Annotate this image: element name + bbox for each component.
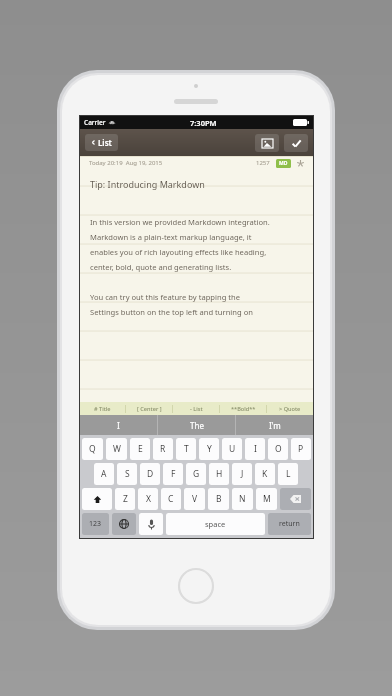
- staticText: I: [117, 420, 120, 431]
- button[interactable]: Backspace: [280, 488, 311, 510]
- staticText: Tip: Introducing Markdown: [90, 178, 205, 190]
- staticText: M: [263, 493, 271, 505]
- staticText: P: [298, 443, 304, 455]
- button[interactable]: C: [161, 488, 181, 510]
- staticText: Q: [89, 443, 96, 455]
- button[interactable]: H: [209, 463, 229, 485]
- staticText: F: [171, 468, 176, 480]
- button[interactable]: Dictate: [139, 513, 163, 535]
- staticText: 1257: [256, 159, 270, 167]
- staticText: L: [286, 468, 291, 480]
- staticText: 7:30PM: [190, 118, 217, 128]
- staticText: The: [190, 420, 204, 431]
- button[interactable]: Q: [82, 438, 103, 460]
- button[interactable]: O: [268, 438, 288, 460]
- button[interactable]: E: [130, 438, 150, 460]
- staticText: D: [147, 468, 154, 480]
- staticText: - List: [190, 405, 203, 413]
- button[interactable]: D: [140, 463, 160, 485]
- button[interactable]: Shift: [82, 488, 112, 510]
- staticText: S: [125, 468, 130, 480]
- button[interactable]: S: [117, 463, 137, 485]
- staticText: N: [239, 493, 246, 505]
- staticText: H: [216, 468, 223, 480]
- button[interactable]: Insert image: [255, 134, 279, 152]
- button[interactable]: I'm: [236, 415, 313, 435]
- button[interactable]: M: [256, 488, 277, 510]
- staticText: Z: [123, 493, 128, 505]
- button[interactable]: A: [94, 463, 114, 485]
- button[interactable]: space: [166, 513, 265, 535]
- button[interactable]: L: [278, 463, 298, 485]
- button[interactable]: V: [184, 488, 205, 510]
- button[interactable]: Switch keyboard: [112, 513, 136, 535]
- button[interactable]: I: [80, 415, 157, 435]
- staticText: E: [138, 443, 143, 455]
- staticText: C: [168, 493, 174, 505]
- button[interactable]: Y: [199, 438, 219, 460]
- button[interactable]: B: [208, 488, 229, 510]
- staticText: > Quote: [279, 405, 301, 413]
- button[interactable]: return: [268, 513, 311, 535]
- button[interactable]: P: [291, 438, 311, 460]
- button[interactable]: N: [232, 488, 253, 510]
- staticText: X: [146, 493, 151, 505]
- button[interactable]: W: [106, 438, 127, 460]
- staticText: You can try out this feature by tapping …: [90, 292, 241, 302]
- staticText: List: [98, 137, 112, 148]
- staticText: J: [241, 468, 244, 480]
- staticText: 123: [89, 519, 102, 529]
- staticText: R: [160, 443, 166, 455]
- staticText: center, bold, quote and generating lists…: [90, 262, 232, 272]
- other: Favorite: [297, 160, 304, 167]
- staticText: O: [275, 443, 282, 455]
- staticText: [ Center ]: [137, 405, 162, 413]
- staticText: U: [229, 443, 236, 455]
- staticText: In this version we provided Markdown int…: [90, 217, 270, 227]
- button[interactable]: X: [138, 488, 158, 510]
- staticText: B: [216, 493, 222, 505]
- button[interactable]: K: [255, 463, 275, 485]
- staticText: I'm: [269, 420, 281, 431]
- button[interactable]: The: [158, 415, 235, 435]
- staticText: G: [193, 468, 200, 480]
- button[interactable]: T: [176, 438, 196, 460]
- staticText: T: [184, 443, 189, 455]
- staticText: Y: [207, 443, 212, 455]
- staticText: V: [192, 493, 198, 505]
- staticText: **Bold**: [231, 405, 256, 413]
- button[interactable]: U: [222, 438, 242, 460]
- button[interactable]: - List: [173, 402, 219, 415]
- button[interactable]: Z: [115, 488, 135, 510]
- button[interactable]: # Title: [80, 402, 125, 415]
- other: Home: [178, 568, 214, 604]
- button[interactable]: J: [232, 463, 252, 485]
- button[interactable]: F: [163, 463, 183, 485]
- staticText: MD: [279, 160, 288, 167]
- staticText: enables you of rich layouting effects li…: [90, 247, 267, 257]
- button[interactable]: > Quote: [267, 402, 313, 415]
- staticText: space: [205, 519, 226, 529]
- staticText: K: [262, 468, 268, 480]
- button[interactable]: **Bold**: [220, 402, 266, 415]
- button[interactable]: 123: [82, 513, 109, 535]
- button[interactable]: List: [85, 134, 118, 151]
- staticText: Carrier: [84, 118, 106, 127]
- button[interactable]: R: [153, 438, 173, 460]
- button[interactable]: I: [245, 438, 265, 460]
- button[interactable]: G: [186, 463, 206, 485]
- button[interactable]: Done: [284, 134, 308, 152]
- staticText: # Title: [94, 405, 111, 413]
- staticText: Markdown is a plain-text markup language…: [90, 232, 252, 242]
- staticText: A: [101, 468, 107, 480]
- staticText: return: [279, 519, 300, 529]
- button[interactable]: [ Center ]: [126, 402, 172, 415]
- staticText: I: [254, 443, 257, 455]
- staticText: Settings button on the top left and turn…: [90, 307, 253, 317]
- staticText: W: [113, 443, 121, 455]
- staticText: Today 20:19 Aug 19, 2015: [89, 159, 163, 167]
